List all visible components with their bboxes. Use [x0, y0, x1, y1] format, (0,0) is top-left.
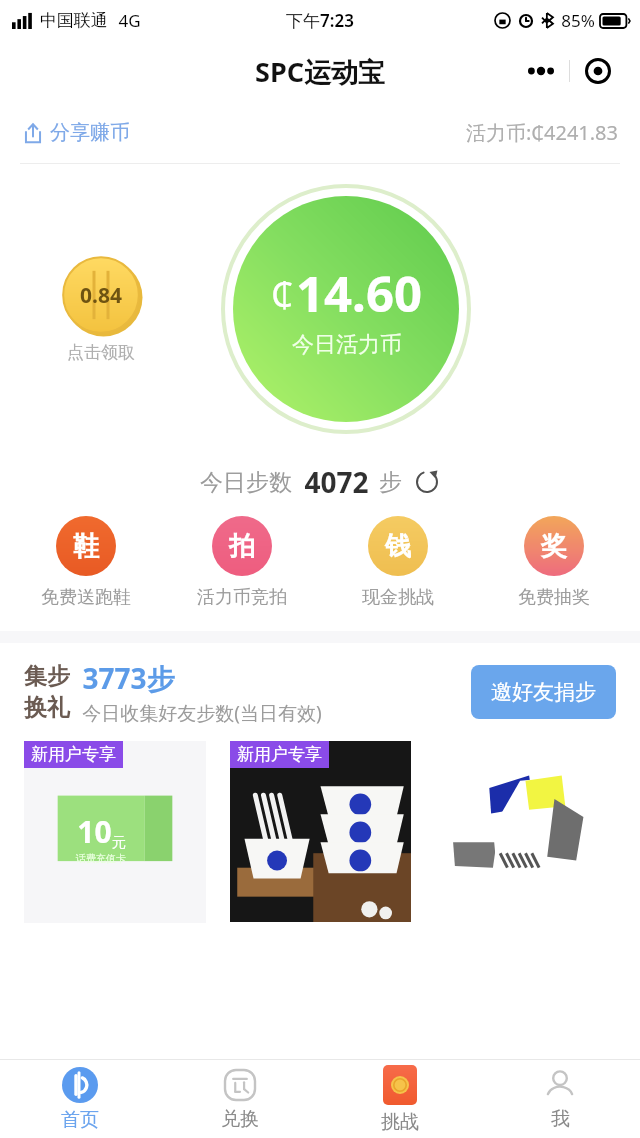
- button[interactable]: 邀好友捐步: [471, 665, 616, 719]
- staticText: SPC运动宝: [255, 53, 385, 90]
- button[interactable]: 拍: [164, 510, 320, 615]
- staticText: 挑战: [381, 1110, 419, 1134]
- button[interactable]: 钱: [320, 510, 476, 615]
- staticText: ₵: [271, 271, 293, 317]
- staticText: 4072: [304, 463, 369, 501]
- staticText: 集步: [24, 662, 70, 691]
- button[interactable]: 我: [480, 1060, 640, 1138]
- staticText: 活力币竞拍: [197, 586, 287, 609]
- staticText: 10: [77, 811, 112, 852]
- staticText: 今日步数: [200, 468, 292, 497]
- button[interactable]: [435, 741, 616, 922]
- staticText: 分享赚币: [50, 120, 130, 145]
- staticText: 今日收集好友步数(当日有效): [82, 700, 322, 726]
- button[interactable]: 分享赚币: [22, 116, 130, 149]
- staticText: 0.84: [80, 281, 122, 310]
- staticText: 新用户专享: [237, 744, 322, 765]
- staticText: 3773步: [82, 659, 175, 697]
- button[interactable]: 新用户专享: [230, 741, 411, 922]
- staticText: 活力币:₵4241.83: [466, 119, 618, 146]
- staticText: 点击领取: [67, 342, 135, 363]
- staticText: 奖: [541, 530, 567, 563]
- staticText: 换礼: [24, 693, 70, 722]
- staticText: 兑换: [221, 1107, 259, 1131]
- staticText: 4G: [118, 9, 141, 32]
- staticText: 今日活力币: [292, 331, 402, 359]
- staticText: 元: [112, 834, 126, 852]
- button[interactable]: 兑换: [160, 1060, 320, 1138]
- staticText: 新用户专享: [31, 744, 116, 765]
- staticText: 免费送跑鞋: [41, 586, 131, 609]
- button[interactable]: Collect coin: [62, 256, 140, 334]
- button[interactable]: 新用户专享: [24, 741, 206, 923]
- staticText: 邀好友捐步: [491, 679, 596, 705]
- staticText: 鞋: [73, 530, 99, 563]
- button[interactable]: More: [513, 49, 569, 93]
- button[interactable]: 鞋: [8, 510, 164, 615]
- button[interactable]: 首页: [0, 1060, 160, 1138]
- button[interactable]: 今日步数: [0, 454, 640, 510]
- button[interactable]: ₵: [223, 186, 469, 432]
- staticText: 免费抽奖: [518, 586, 590, 609]
- staticText: 85%: [561, 9, 595, 32]
- button[interactable]: 奖: [476, 510, 632, 615]
- staticText: 现金挑战: [362, 586, 434, 609]
- staticText: 中国联通: [40, 10, 108, 31]
- staticText: 拍: [229, 530, 255, 563]
- staticText: 话费充值卡: [76, 852, 126, 865]
- staticText: 钱: [385, 530, 411, 563]
- staticText: 步: [379, 468, 402, 497]
- button[interactable]: 挑战: [320, 1060, 480, 1138]
- staticText: 我: [551, 1107, 570, 1131]
- staticText: 下午7:23: [286, 9, 354, 32]
- staticText: 首页: [61, 1108, 99, 1132]
- staticText: 14.60: [296, 260, 422, 327]
- button[interactable]: Close: [570, 49, 626, 93]
